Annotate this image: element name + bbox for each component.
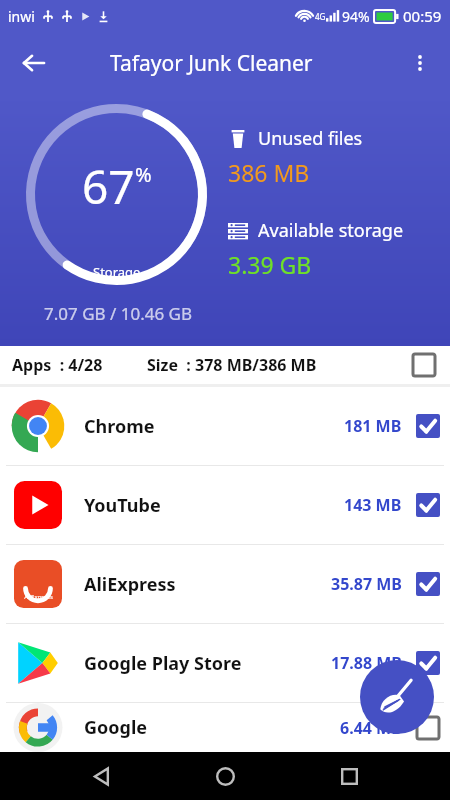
button[interactable]: More options	[398, 41, 442, 85]
staticText: Tafayor Junk Cleaner	[110, 49, 313, 78]
button[interactable]: Apps : 4/28	[0, 346, 450, 384]
staticText: Apps : 4/28	[12, 354, 103, 376]
button[interactable]: Recents	[327, 754, 371, 798]
staticText: Google	[84, 715, 340, 740]
button[interactable]: Back	[80, 754, 124, 798]
staticText: YouTube	[84, 493, 344, 518]
button[interactable]: Select Google Play Store	[416, 651, 440, 675]
button[interactable]: Select Chrome	[416, 414, 440, 438]
button[interactable]: Select Google	[416, 716, 440, 740]
button[interactable]: YouTube	[0, 466, 450, 544]
button[interactable]: Select all	[412, 353, 436, 377]
staticText: 7.07 GB / 10.46 GB	[44, 302, 193, 325]
staticText: 4G	[315, 11, 326, 22]
staticText: Unused files	[258, 126, 363, 151]
button[interactable]: Select YouTube	[416, 493, 440, 517]
staticText: 143 MB	[344, 494, 402, 516]
staticText: 386 MB	[228, 157, 310, 188]
staticText: 00:59	[403, 6, 442, 26]
staticText: 67	[82, 155, 135, 218]
button[interactable]: Back	[12, 41, 56, 85]
button[interactable]: Google	[0, 703, 450, 752]
staticText: AliExpress	[84, 572, 331, 597]
button[interactable]: Clean	[360, 660, 434, 734]
staticText: 35.87 MB	[331, 573, 402, 595]
button[interactable]: Home	[203, 754, 247, 798]
staticText: 6.44 MB	[340, 717, 402, 739]
staticText: AliExpress	[24, 593, 53, 601]
staticText: Storage	[93, 263, 141, 281]
button[interactable]: Google Play Store	[0, 624, 450, 702]
button[interactable]: AliExpress	[0, 545, 450, 623]
staticText: Size : 378 MB/386 MB	[147, 354, 317, 376]
staticText: 181 MB	[344, 415, 402, 437]
staticText: Google Play Store	[84, 651, 331, 676]
button[interactable]: Select AliExpress	[416, 572, 440, 596]
staticText: Chrome	[84, 414, 344, 439]
button[interactable]: Chrome	[0, 387, 450, 465]
staticText: 17.88 MB	[331, 652, 402, 674]
staticText: inwi	[8, 7, 35, 26]
staticText: %	[135, 161, 152, 188]
staticText: Available storage	[258, 218, 404, 243]
staticText: 3.39 GB	[228, 249, 312, 280]
staticText: 94%	[342, 7, 370, 26]
